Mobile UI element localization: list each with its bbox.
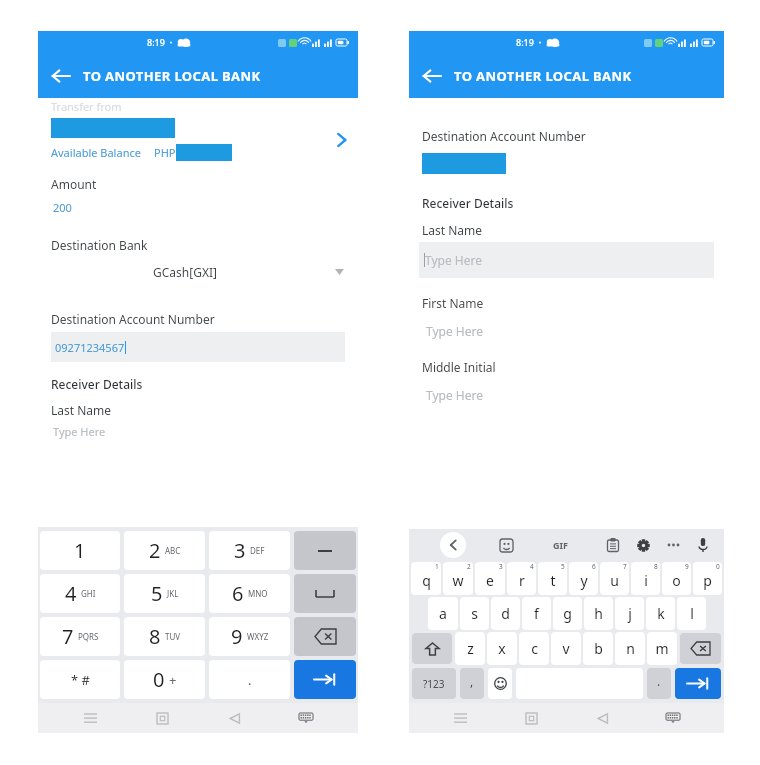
staticText: 3 (234, 537, 246, 564)
button[interactable]: More (658, 530, 688, 560)
button[interactable]: j (615, 597, 644, 630)
button[interactable]: . (209, 660, 290, 699)
button[interactable]: ?123 (412, 668, 456, 699)
staticText: Type Here (426, 387, 483, 403)
staticText: 5 (151, 580, 163, 607)
staticText: 8:19 (516, 36, 534, 48)
button[interactable]: Clipboard (598, 530, 628, 560)
button[interactable]: 5 (124, 574, 205, 613)
button[interactable]: * # (40, 660, 120, 699)
button[interactable]: Recents (78, 706, 102, 730)
staticText: , (470, 673, 474, 689)
button[interactable]: Next (294, 660, 356, 699)
button[interactable]: f (522, 597, 551, 630)
button[interactable]: Period (647, 668, 671, 699)
button[interactable]: Emoji (488, 668, 512, 699)
button[interactable]: 2 (124, 531, 205, 570)
button[interactable]: Space (294, 574, 356, 613)
staticText: f (534, 604, 539, 623)
button[interactable]: Back (417, 61, 447, 91)
button[interactable]: Back (46, 61, 76, 91)
button[interactable]: Stickers (491, 530, 521, 560)
button[interactable]: Backspace (680, 633, 721, 664)
button[interactable]: u (600, 562, 629, 595)
button[interactable]: Settings (628, 530, 658, 560)
button[interactable]: l (677, 597, 706, 630)
button[interactable]: Type Here (419, 242, 714, 278)
button[interactable]: Next (675, 668, 721, 699)
button[interactable]: 7 (40, 617, 120, 656)
staticText: 09271234567 (55, 340, 125, 355)
button[interactable]: Voice input (688, 530, 718, 560)
staticText: b (594, 639, 603, 658)
button[interactable]: c (519, 632, 549, 665)
button[interactable]: t (538, 562, 567, 595)
button[interactable]: GCash[GXI] (38, 261, 358, 283)
button[interactable]: Shift (412, 633, 452, 664)
staticText: e (486, 571, 494, 590)
staticText: 8 (654, 562, 658, 571)
button[interactable]: Backspace (294, 617, 356, 656)
button[interactable]: r (507, 562, 536, 595)
button[interactable]: Home (150, 706, 174, 730)
button[interactable]: i (631, 562, 660, 595)
button[interactable]: n (615, 632, 645, 665)
button[interactable]: 4 (40, 574, 120, 613)
button[interactable]: Hide keyboard (661, 706, 685, 730)
button[interactable]: Back (440, 532, 466, 558)
staticText: 1 (74, 537, 86, 564)
button[interactable]: 1 (40, 531, 120, 570)
button[interactable]: 9 (209, 617, 290, 656)
button[interactable]: y (569, 562, 598, 595)
staticText: w (452, 571, 464, 590)
button[interactable]: w (443, 562, 473, 595)
button[interactable]: k (646, 597, 675, 630)
staticText: 9 (231, 623, 243, 650)
button[interactable]: o (662, 562, 691, 595)
button[interactable]: s (460, 597, 489, 630)
button[interactable]: g (553, 597, 582, 630)
button[interactable]: 0 (124, 660, 205, 699)
button[interactable]: b (583, 632, 613, 665)
staticText: 6 (592, 562, 596, 571)
button[interactable]: Dash (294, 531, 356, 570)
staticText: 8:19 (147, 36, 165, 48)
button[interactable]: Select account (324, 123, 358, 157)
staticText: p (703, 571, 712, 590)
button[interactable]: x (487, 632, 517, 665)
button[interactable]: v (551, 632, 581, 665)
staticText: Type Here (53, 424, 106, 439)
staticText: Destination Bank (51, 237, 148, 253)
button[interactable]: 8 (124, 617, 205, 656)
staticText: q (422, 571, 431, 590)
button[interactable]: Recents (448, 706, 472, 730)
staticText: n (626, 639, 635, 658)
button[interactable]: 3 (209, 531, 290, 570)
staticText: DEF (250, 545, 265, 556)
button[interactable]: e (475, 562, 505, 595)
button[interactable]: 6 (209, 574, 290, 613)
button[interactable]: m (647, 632, 677, 665)
staticText: s (471, 604, 478, 623)
button[interactable]: q (411, 562, 441, 595)
button[interactable]: p (693, 562, 722, 595)
button[interactable]: a (428, 597, 458, 630)
button[interactable]: 09271234567 (51, 332, 345, 362)
staticText: Last Name (422, 222, 483, 238)
staticText: 7 (62, 623, 74, 650)
button[interactable]: z (455, 632, 485, 665)
button[interactable]: h (584, 597, 613, 630)
button[interactable]: Home (519, 706, 543, 730)
staticText: * # (71, 671, 90, 689)
button[interactable]: Hide keyboard (294, 706, 318, 730)
button[interactable]: d (491, 597, 520, 630)
button[interactable]: GIF (547, 532, 573, 558)
button[interactable]: Back (222, 706, 246, 730)
staticText: ?123 (423, 677, 445, 691)
staticText: Transfer from (51, 99, 122, 114)
button[interactable]: Back (590, 706, 614, 730)
staticText: . (657, 673, 661, 689)
staticText: x (498, 639, 506, 658)
button[interactable]: Comma (460, 668, 484, 699)
